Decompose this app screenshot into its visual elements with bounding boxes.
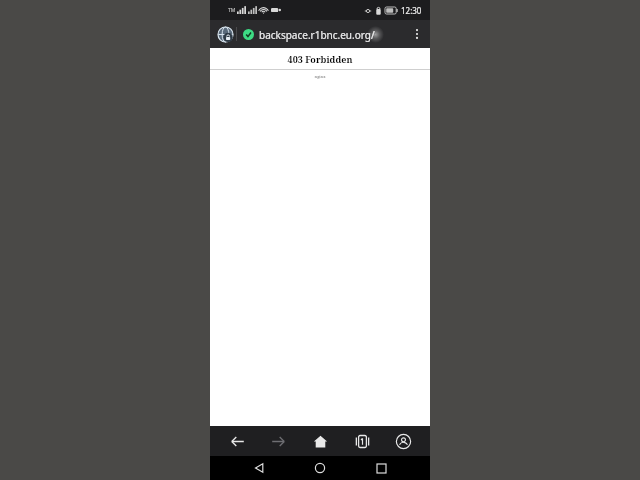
button[interactable]: Incognito mode (214, 23, 236, 45)
staticText: TM (228, 7, 236, 14)
button[interactable]: Back (247, 456, 271, 480)
button[interactable]: Switch tabs, 1 tab (347, 426, 377, 456)
button[interactable]: backspace.r1bnc.eu.org/exploit.z (237, 20, 406, 48)
staticText: 403 Forbidden (210, 53, 430, 65)
staticText: 12:30 (401, 5, 422, 16)
button[interactable]: Recent apps (369, 456, 393, 480)
button[interactable]: Forward (263, 426, 293, 456)
button[interactable]: Back (222, 426, 252, 456)
button[interactable]: Home (308, 456, 332, 480)
staticText: nginx (210, 74, 430, 79)
staticText: backspace.r1bnc.eu.org/exploit.z (259, 28, 406, 42)
button[interactable]: Account (388, 426, 418, 456)
button[interactable]: Home (305, 426, 335, 456)
button[interactable]: More options (406, 23, 428, 45)
